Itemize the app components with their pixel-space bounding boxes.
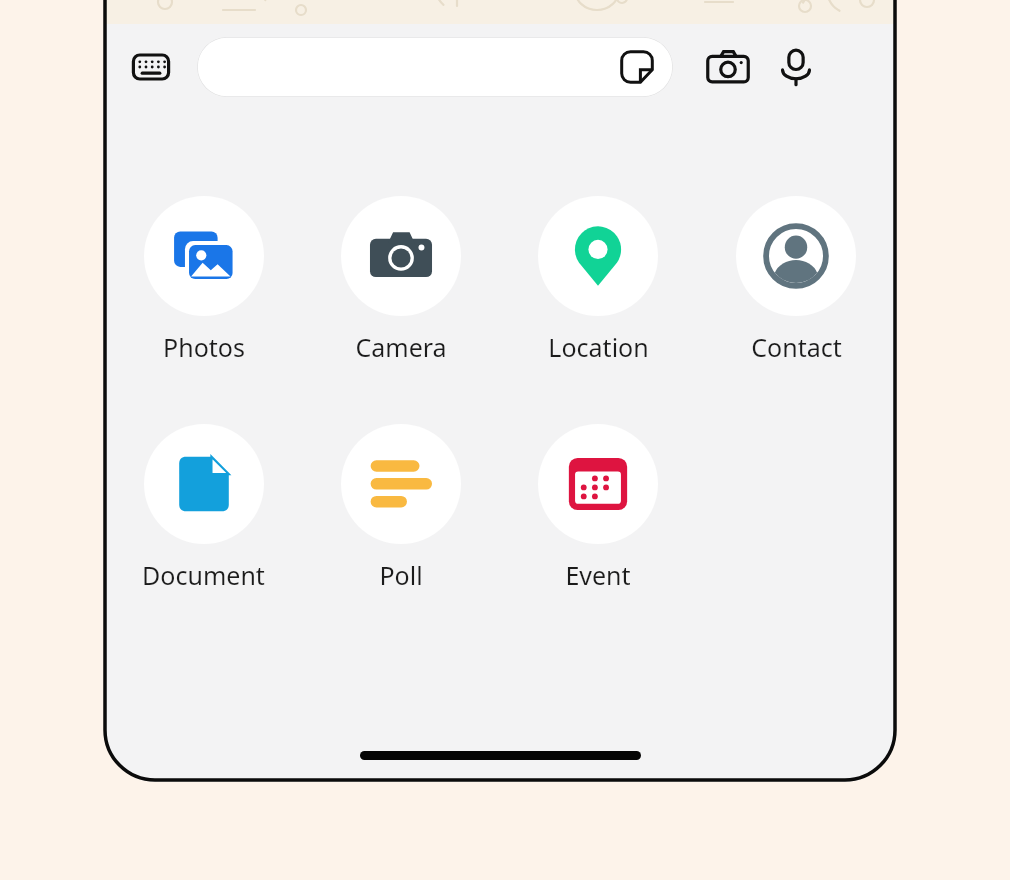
staticText: Contact — [751, 330, 842, 364]
button[interactable]: Camera — [699, 38, 757, 96]
button[interactable]: Keyboard — [123, 39, 179, 95]
button[interactable]: Photos — [105, 196, 302, 364]
staticText: Document — [142, 558, 265, 592]
staticText: Poll — [379, 558, 423, 592]
button[interactable]: Camera — [302, 196, 499, 364]
button[interactable]: Voice message — [767, 38, 825, 96]
button[interactable]: Location — [499, 196, 697, 364]
staticText: Location — [548, 330, 649, 364]
button[interactable]: Stickers — [197, 37, 673, 97]
button[interactable]: Contact — [697, 196, 895, 364]
button[interactable]: Poll — [302, 424, 499, 592]
button[interactable]: Document — [105, 424, 302, 592]
button[interactable]: Event — [499, 424, 697, 592]
button[interactable]: Stickers — [615, 45, 659, 89]
staticText: Photos — [163, 330, 245, 364]
staticText: Event — [565, 558, 631, 592]
staticText: Camera — [355, 330, 447, 364]
